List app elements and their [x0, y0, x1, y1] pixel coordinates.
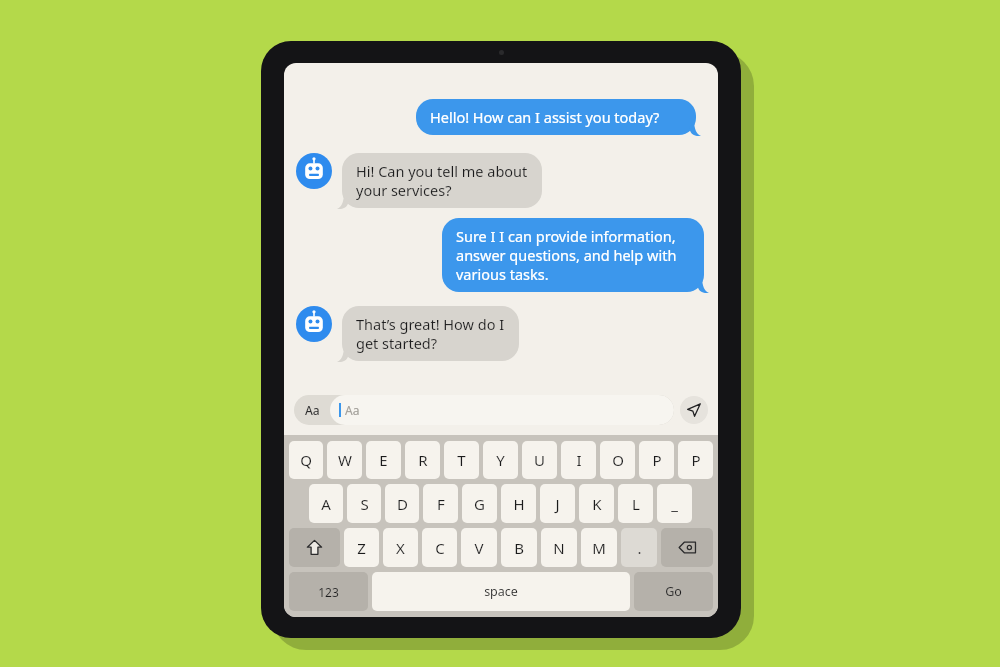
- other: Assistant avatar: [296, 306, 332, 342]
- button[interactable]: Send: [680, 396, 708, 424]
- button[interactable]: Go: [634, 572, 713, 611]
- button[interactable]: P: [678, 441, 713, 479]
- button[interactable]: M: [581, 528, 617, 567]
- button[interactable]: _: [657, 484, 692, 523]
- button[interactable]: I: [561, 441, 596, 479]
- staticText: H: [513, 494, 525, 514]
- button[interactable]: Hello! How can I assist you today?: [416, 99, 696, 135]
- staticText: 123: [318, 584, 339, 600]
- staticText: Z: [357, 538, 366, 558]
- button[interactable]: Shift: [289, 528, 340, 567]
- button[interactable]: F: [423, 484, 458, 523]
- button[interactable]: T: [444, 441, 479, 479]
- staticText: O: [612, 450, 624, 470]
- button[interactable]: P: [639, 441, 674, 479]
- staticText: Aa: [305, 402, 320, 418]
- staticText: D: [397, 494, 408, 514]
- staticText: A: [321, 494, 331, 514]
- button[interactable]: N: [541, 528, 577, 567]
- button[interactable]: A: [309, 484, 343, 523]
- button[interactable]: J: [540, 484, 575, 523]
- button[interactable]: Z: [344, 528, 379, 567]
- button[interactable]: E: [366, 441, 401, 479]
- staticText: Aa: [345, 402, 360, 418]
- button[interactable]: .: [621, 528, 657, 567]
- button[interactable]: 123: [289, 572, 368, 611]
- staticText: Q: [300, 450, 312, 470]
- button[interactable]: L: [618, 484, 653, 523]
- staticText: Hi! Can you tell me about your services?: [356, 161, 528, 200]
- staticText: Hello! How can I assist you today?: [430, 107, 660, 127]
- staticText: M: [592, 538, 606, 558]
- button[interactable]: V: [461, 528, 497, 567]
- staticText: B: [514, 538, 524, 558]
- button[interactable]: Text format: [294, 395, 330, 425]
- button[interactable]: H: [501, 484, 536, 523]
- button[interactable]: X: [383, 528, 418, 567]
- button[interactable]: Q: [289, 441, 323, 479]
- staticText: L: [632, 494, 640, 514]
- staticText: space: [484, 583, 518, 600]
- button[interactable]: S: [347, 484, 381, 523]
- staticText: E: [379, 450, 388, 470]
- staticText: N: [553, 538, 565, 558]
- staticText: Go: [665, 583, 682, 600]
- staticText: R: [418, 450, 428, 470]
- staticText: T: [457, 450, 466, 470]
- staticText: X: [396, 538, 405, 558]
- staticText: _: [671, 494, 678, 514]
- button[interactable]: R: [405, 441, 440, 479]
- button[interactable]: B: [501, 528, 537, 567]
- staticText: .: [637, 538, 642, 558]
- staticText: Y: [496, 450, 505, 470]
- staticText: K: [592, 494, 602, 514]
- staticText: G: [474, 494, 485, 514]
- staticText: J: [555, 494, 560, 514]
- staticText: I: [576, 450, 582, 470]
- button[interactable]: C: [422, 528, 457, 567]
- button[interactable]: Backspace: [661, 528, 713, 567]
- button[interactable]: U: [522, 441, 557, 479]
- button[interactable]: Aa: [330, 395, 674, 425]
- staticText: F: [437, 494, 445, 514]
- button[interactable]: Y: [483, 441, 518, 479]
- button[interactable]: G: [462, 484, 497, 523]
- staticText: C: [435, 538, 445, 558]
- button[interactable]: space: [372, 572, 630, 611]
- button[interactable]: W: [327, 441, 362, 479]
- staticText: Sure I I can provide information, answer…: [456, 226, 677, 284]
- button[interactable]: O: [600, 441, 635, 479]
- staticText: That’s great! How do I get started?: [356, 314, 505, 353]
- button[interactable]: Assistant avatar: [296, 306, 519, 361]
- button[interactable]: Sure I I can provide information, answer…: [442, 218, 704, 292]
- staticText: U: [534, 450, 545, 470]
- button[interactable]: Assistant avatar: [296, 153, 542, 208]
- staticText: P: [691, 450, 701, 470]
- button[interactable]: K: [579, 484, 614, 523]
- other: Assistant avatar: [296, 153, 332, 189]
- staticText: W: [338, 450, 352, 470]
- staticText: P: [652, 450, 662, 470]
- button[interactable]: D: [385, 484, 419, 523]
- staticText: V: [474, 538, 484, 558]
- staticText: S: [360, 494, 369, 514]
